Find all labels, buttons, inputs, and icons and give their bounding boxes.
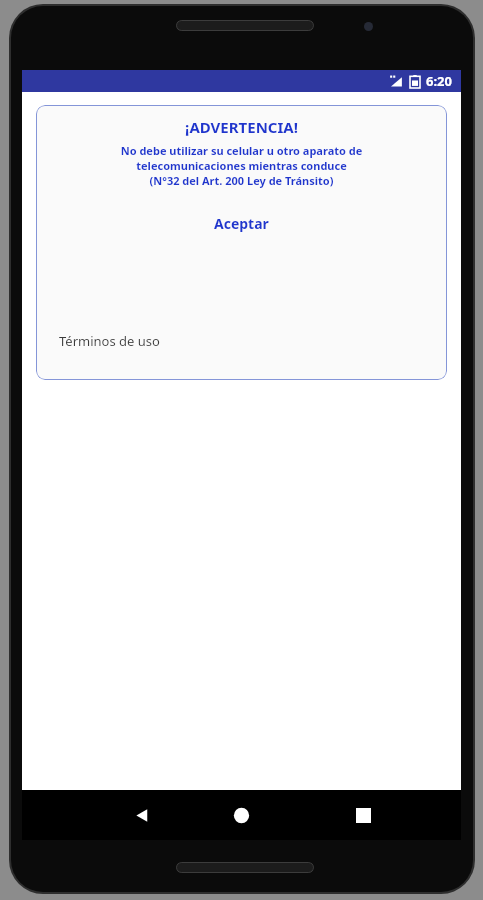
staticText: ¡ADVERTENCIA! — [185, 117, 298, 137]
staticText: Términos de uso — [59, 332, 160, 350]
button[interactable]: Recent apps — [321, 790, 405, 840]
button[interactable]: Términos de uso — [36, 332, 447, 380]
staticText: Aceptar — [214, 214, 269, 233]
button[interactable]: Back — [100, 790, 184, 840]
button[interactable]: Home — [199, 790, 283, 840]
button[interactable]: Aceptar — [198, 210, 285, 237]
staticText: No debe utilizar su celular u otro apara… — [36, 143, 447, 188]
staticText: 6:20 — [426, 72, 452, 90]
